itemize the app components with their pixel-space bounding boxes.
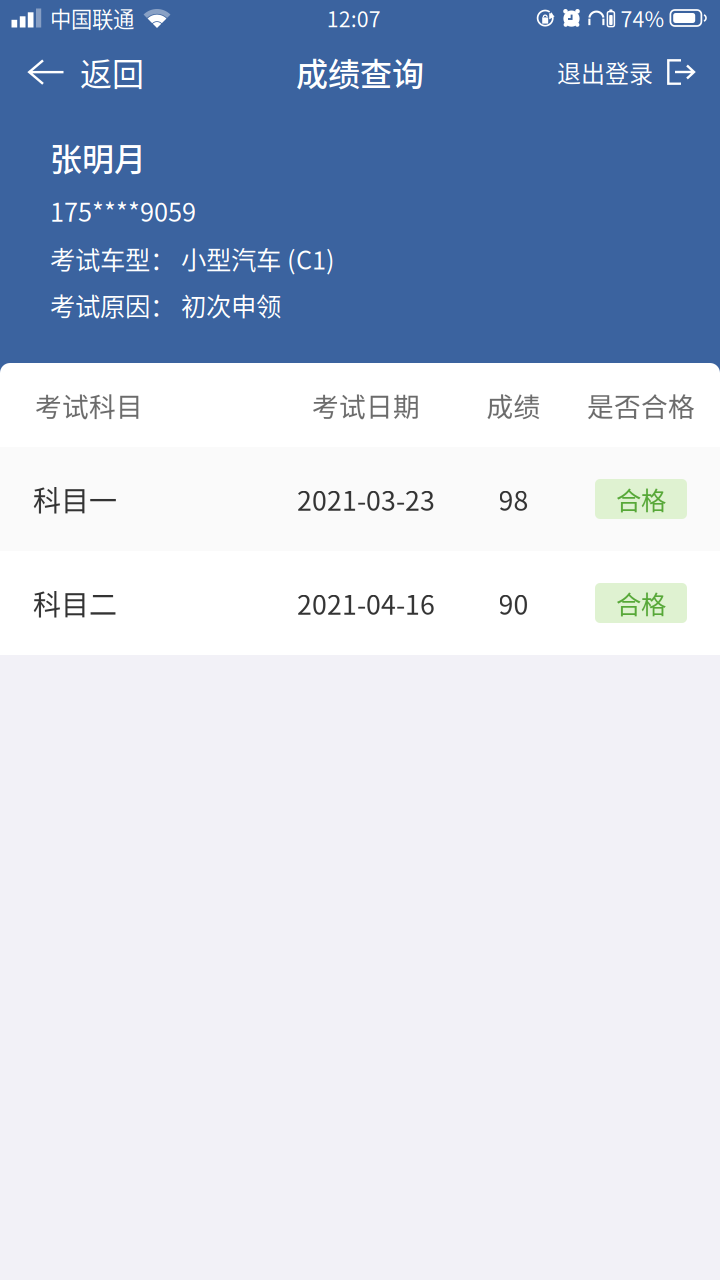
staticText: 考试日期 bbox=[312, 386, 420, 424]
staticText: 科目二 bbox=[33, 583, 117, 623]
staticText: 90 bbox=[498, 584, 528, 622]
staticText: 成绩查询 bbox=[296, 49, 424, 95]
staticText: 科目一 bbox=[33, 479, 117, 519]
staticText: 2021-03-23 bbox=[297, 480, 435, 518]
staticText: 考试原因： 初次申领 bbox=[50, 287, 281, 323]
staticText: 175****9059 bbox=[50, 192, 196, 229]
staticText: 成绩 bbox=[486, 386, 540, 424]
staticText: 返回 bbox=[80, 49, 144, 95]
staticText: 张明月 bbox=[50, 134, 146, 180]
staticText: 2021-04-16 bbox=[297, 584, 435, 622]
staticText: 中国联通 bbox=[50, 3, 134, 33]
staticText: 74% bbox=[620, 3, 664, 33]
staticText: 合格 bbox=[616, 585, 666, 621]
button[interactable]: 返回 bbox=[0, 36, 168, 108]
staticText: 考试车型： 小型汽车 (C1) bbox=[50, 240, 335, 277]
staticText: 是否合格 bbox=[587, 386, 695, 424]
button[interactable]: 退出登录 bbox=[535, 36, 720, 108]
staticText: 12:07 bbox=[327, 3, 381, 33]
staticText: 98 bbox=[498, 480, 528, 518]
staticText: 合格 bbox=[616, 481, 666, 517]
staticText: 考试科目 bbox=[35, 386, 143, 424]
staticText: 退出登录 bbox=[557, 55, 653, 89]
